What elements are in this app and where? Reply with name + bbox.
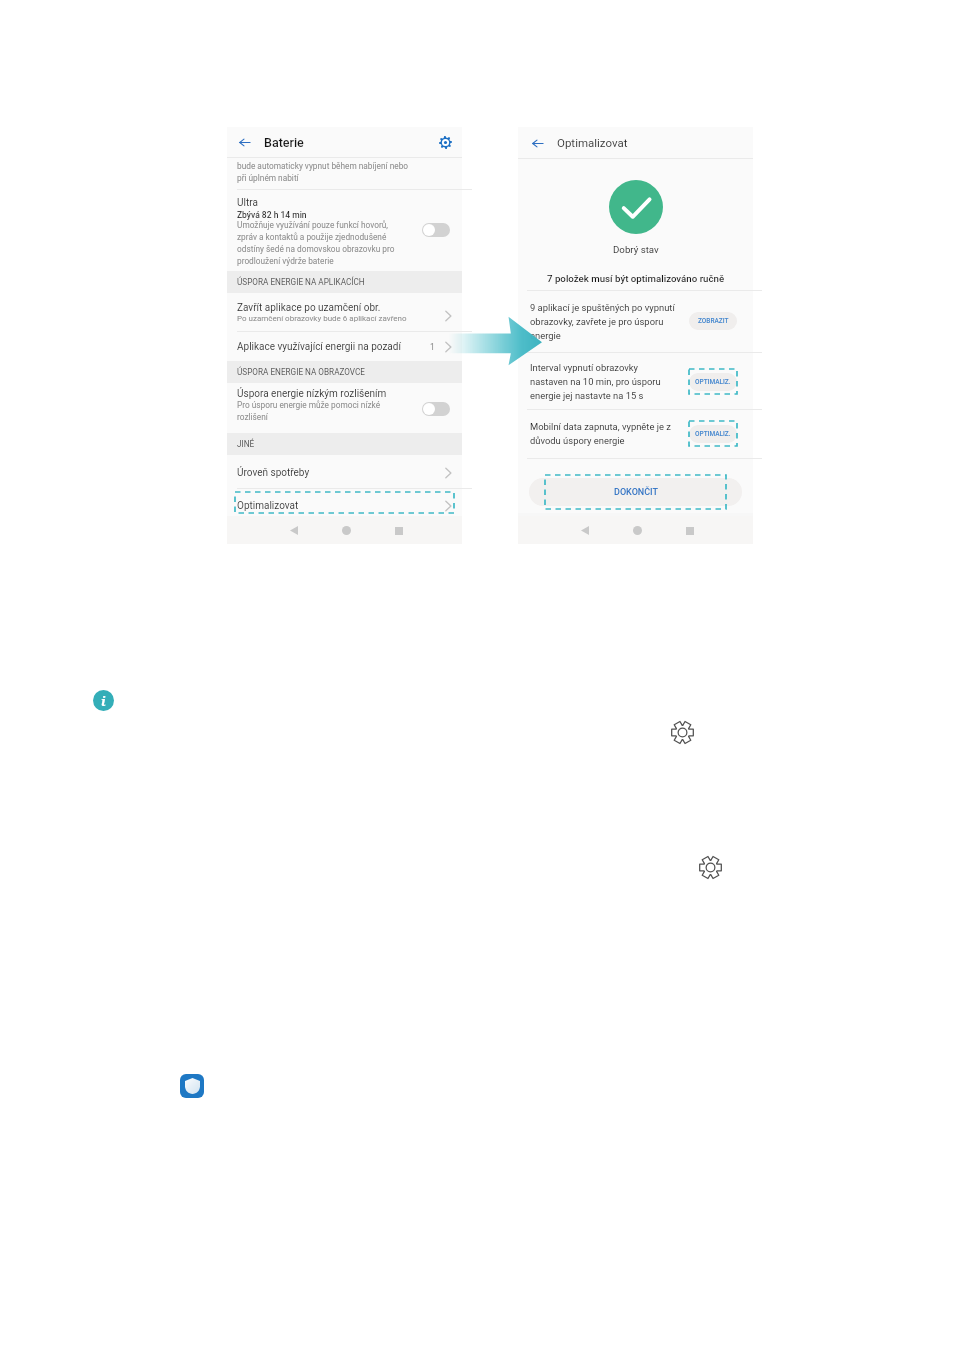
staticText: Mobilní data zapnuta, vypněte je z důvod… xyxy=(530,421,678,446)
staticText: JINÉ xyxy=(237,439,255,449)
button[interactable]: Recent apps xyxy=(387,519,410,542)
staticText: ÚSPORA ENERGIE NA OBRAZOVCE xyxy=(237,367,365,377)
staticText: 9 aplikací je spuštěných po vypnutí obra… xyxy=(530,302,678,341)
button[interactable]: OPTIMALIZ. xyxy=(689,425,737,443)
button[interactable]: 9 aplikací je spuštěných po vypnutí obra… xyxy=(518,290,753,352)
button[interactable]: ZOBRAZIT xyxy=(689,312,737,330)
button[interactable]: Mobilní data zapnuta, vypněte je z důvod… xyxy=(518,409,753,458)
button[interactable]: DOKONČIT xyxy=(529,478,742,506)
staticText: Zbývá 82 h 14 min xyxy=(237,210,307,220)
button[interactable]: OPTIMALIZ. xyxy=(689,373,737,391)
staticText: ZOBRAZIT xyxy=(698,317,729,325)
button[interactable]: Recent apps xyxy=(678,519,701,542)
staticText: Po uzamčení obrazovky bude 6 aplikací za… xyxy=(237,314,407,323)
staticText: Optimalizovat xyxy=(557,136,628,149)
button[interactable] xyxy=(422,223,450,237)
staticText: OPTIMALIZ. xyxy=(695,430,731,438)
button[interactable]: Back xyxy=(528,134,546,152)
button[interactable]: Aplikace využívající energii na pozadí xyxy=(227,332,462,361)
button[interactable]: Settings xyxy=(436,133,454,151)
staticText: 7 položek musí být optimalizováno ručně xyxy=(547,273,725,284)
staticText: Baterie xyxy=(264,135,304,150)
staticText: DOKONČIT xyxy=(614,487,658,498)
staticText: Úspora energie nízkým rozlišením xyxy=(237,388,387,400)
button[interactable]: Back xyxy=(573,519,596,542)
staticText: Úroveň spotřeby xyxy=(237,467,310,479)
staticText: Pro úsporu energie může pomoci nízké roz… xyxy=(237,400,381,422)
button[interactable]: Home xyxy=(626,519,649,542)
staticText: Umožňuje využívání pouze funkcí hovorů, … xyxy=(237,220,395,266)
staticText: OPTIMALIZ. xyxy=(695,378,731,386)
staticText: ÚSPORA ENERGIE NA APLIKACÍCH xyxy=(237,277,365,287)
button[interactable]: Information xyxy=(93,690,114,711)
button[interactable]: Zavřít aplikace po uzamčení obr. xyxy=(227,293,462,324)
button[interactable] xyxy=(422,402,450,416)
button[interactable]: Back xyxy=(282,519,305,542)
staticText: bude automaticky vypnut během nabíjení n… xyxy=(237,161,409,183)
button[interactable]: Home xyxy=(335,519,358,542)
staticText: i xyxy=(101,692,106,710)
staticText: Optimalizovat xyxy=(237,500,299,512)
staticText: 1 xyxy=(430,342,435,352)
staticText: Interval vypnutí obrazovky nastaven na 1… xyxy=(530,362,678,401)
staticText: Dobrý stav xyxy=(613,244,659,255)
button[interactable]: Back xyxy=(235,133,253,151)
button[interactable]: Interval vypnutí obrazovky nastaven na 1… xyxy=(518,352,753,410)
button[interactable]: Phone Manager xyxy=(180,1074,204,1098)
staticText: Zavřít aplikace po uzamčení obr. xyxy=(237,302,381,314)
staticText: Aplikace využívající energii na pozadí xyxy=(237,341,401,353)
staticText: Ultra xyxy=(237,197,258,209)
button[interactable]: Úroveň spotřeby xyxy=(227,458,462,487)
button[interactable]: Optimalizovat xyxy=(227,491,462,520)
